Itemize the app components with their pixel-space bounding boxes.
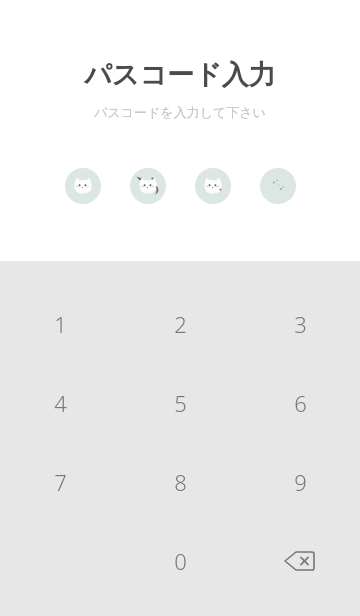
button[interactable]: 8 — [120, 442, 240, 521]
button[interactable]: 3 — [240, 284, 360, 363]
staticText: 4 — [54, 388, 67, 418]
staticText: 5 — [174, 388, 187, 418]
button[interactable]: 9 — [240, 442, 360, 521]
button[interactable]: 0 — [120, 521, 240, 600]
button[interactable]: 2 — [120, 284, 240, 363]
staticText: 3 — [294, 309, 307, 339]
button[interactable]: 5 — [120, 363, 240, 442]
button[interactable]: 7 — [0, 442, 120, 521]
staticText: 0 — [174, 546, 187, 576]
staticText: 7 — [54, 467, 67, 497]
staticText: 9 — [294, 467, 307, 497]
button[interactable]: 6 — [240, 363, 360, 442]
staticText: 8 — [174, 467, 187, 497]
button[interactable]: 4 — [0, 363, 120, 442]
staticText: パスコード入力 — [84, 58, 276, 92]
button[interactable]: Delete — [240, 521, 360, 600]
staticText: 2 — [174, 309, 187, 339]
staticText: パスコードを入力して下さい — [94, 104, 266, 120]
staticText: 6 — [294, 388, 307, 418]
button[interactable]: 1 — [0, 284, 120, 363]
staticText: 1 — [54, 309, 67, 339]
